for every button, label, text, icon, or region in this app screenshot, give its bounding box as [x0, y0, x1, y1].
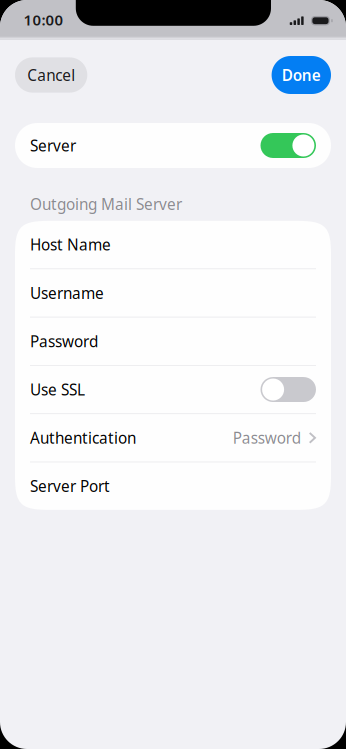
- button[interactable]: Done: [272, 56, 331, 94]
- staticText: Use SSL: [30, 379, 85, 400]
- staticText: Username: [30, 282, 104, 303]
- staticText: Server Port: [30, 476, 110, 497]
- staticText: Outgoing Mail Server: [30, 193, 182, 214]
- staticText: 10:00: [23, 10, 63, 30]
- button[interactable]: Server Port: [15, 462, 331, 510]
- staticText: Password: [233, 427, 301, 448]
- button[interactable]: Authentication: [15, 414, 331, 462]
- staticText: Password: [30, 331, 98, 352]
- staticText: Authentication: [30, 427, 136, 448]
- staticText: Server: [30, 135, 76, 156]
- button[interactable]: Password: [15, 317, 331, 365]
- staticText: Cancel: [27, 65, 75, 85]
- button[interactable]: Username: [15, 269, 331, 317]
- button[interactable]: Host Name: [15, 221, 331, 268]
- button[interactable]: Cancel: [15, 57, 87, 93]
- staticText: Done: [282, 65, 321, 85]
- button[interactable]: Server: [15, 123, 331, 168]
- button[interactable]: Use SSL: [15, 366, 331, 413]
- staticText: Host Name: [30, 234, 111, 255]
